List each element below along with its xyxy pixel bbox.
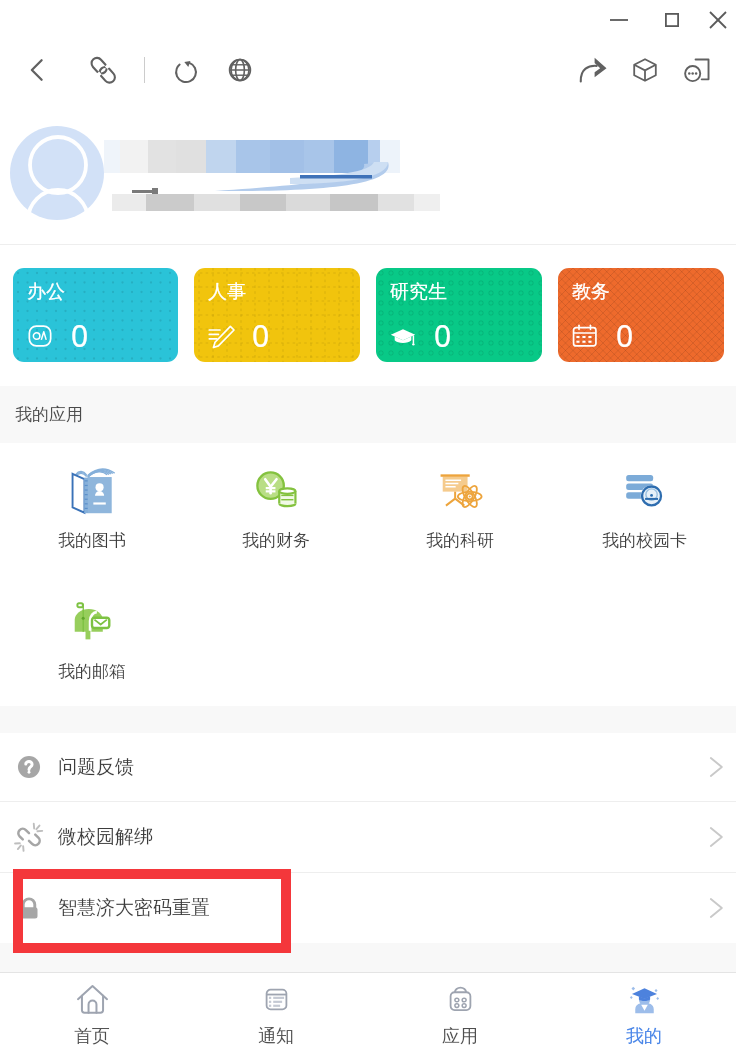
- staticText: 办公: [27, 280, 65, 304]
- staticText: 0: [616, 315, 634, 356]
- staticText: 通知: [258, 1025, 294, 1048]
- staticText: 我的图书: [58, 530, 126, 551]
- button[interactable]: Share: [575, 52, 611, 88]
- button[interactable]: Package: [627, 52, 663, 88]
- button[interactable]: Refresh: [168, 52, 204, 88]
- staticText: 我的校园卡: [602, 530, 687, 551]
- staticText: 我的财务: [242, 530, 310, 551]
- button[interactable]: 我的科研: [368, 443, 552, 574]
- staticText: 我的邮箱: [58, 661, 126, 682]
- staticText: 我的科研: [426, 530, 494, 551]
- button[interactable]: Open in browser: [222, 52, 258, 88]
- button[interactable]: 我的图书: [0, 443, 184, 574]
- button[interactable]: 教务: [558, 268, 724, 362]
- button[interactable]: Close: [700, 0, 736, 40]
- staticText: 0: [71, 315, 89, 356]
- button[interactable]: 我的财务: [184, 443, 368, 574]
- staticText: 我的应用: [15, 404, 83, 425]
- button[interactable]: 人事: [194, 268, 360, 362]
- staticText: 首页: [74, 1025, 110, 1048]
- button[interactable]: 我的: [552, 973, 736, 1056]
- staticText: 我的: [626, 1025, 662, 1048]
- staticText: 0: [252, 315, 270, 356]
- staticText: 微校园解绑: [58, 825, 153, 849]
- button[interactable]: 微校园解绑: [0, 802, 736, 872]
- button[interactable]: Minimize: [594, 0, 644, 40]
- button[interactable]: 通知: [184, 973, 368, 1056]
- button[interactable]: 我的邮箱: [0, 574, 184, 706]
- button[interactable]: Maximize: [644, 0, 700, 40]
- button[interactable]: 应用: [368, 973, 552, 1056]
- button[interactable]: 我的校园卡: [552, 443, 736, 574]
- staticText: 应用: [442, 1025, 478, 1048]
- staticText: 人事: [208, 280, 246, 304]
- staticText: 问题反馈: [58, 755, 134, 779]
- staticText: 智慧济大密码重置: [58, 896, 210, 920]
- button[interactable]: 智慧济大密码重置: [0, 873, 736, 943]
- button[interactable]: 问题反馈: [0, 733, 736, 801]
- staticText: 教务: [572, 280, 610, 304]
- staticText: 研究生: [390, 280, 447, 304]
- button[interactable]: 研究生: [376, 268, 542, 362]
- button[interactable]: More options: [679, 52, 715, 88]
- button[interactable]: 办公: [13, 268, 178, 362]
- button[interactable]: 首页: [0, 973, 184, 1056]
- staticText: 0: [434, 315, 452, 356]
- button[interactable]: Back: [20, 52, 56, 88]
- button[interactable]: Copy link: [85, 52, 121, 88]
